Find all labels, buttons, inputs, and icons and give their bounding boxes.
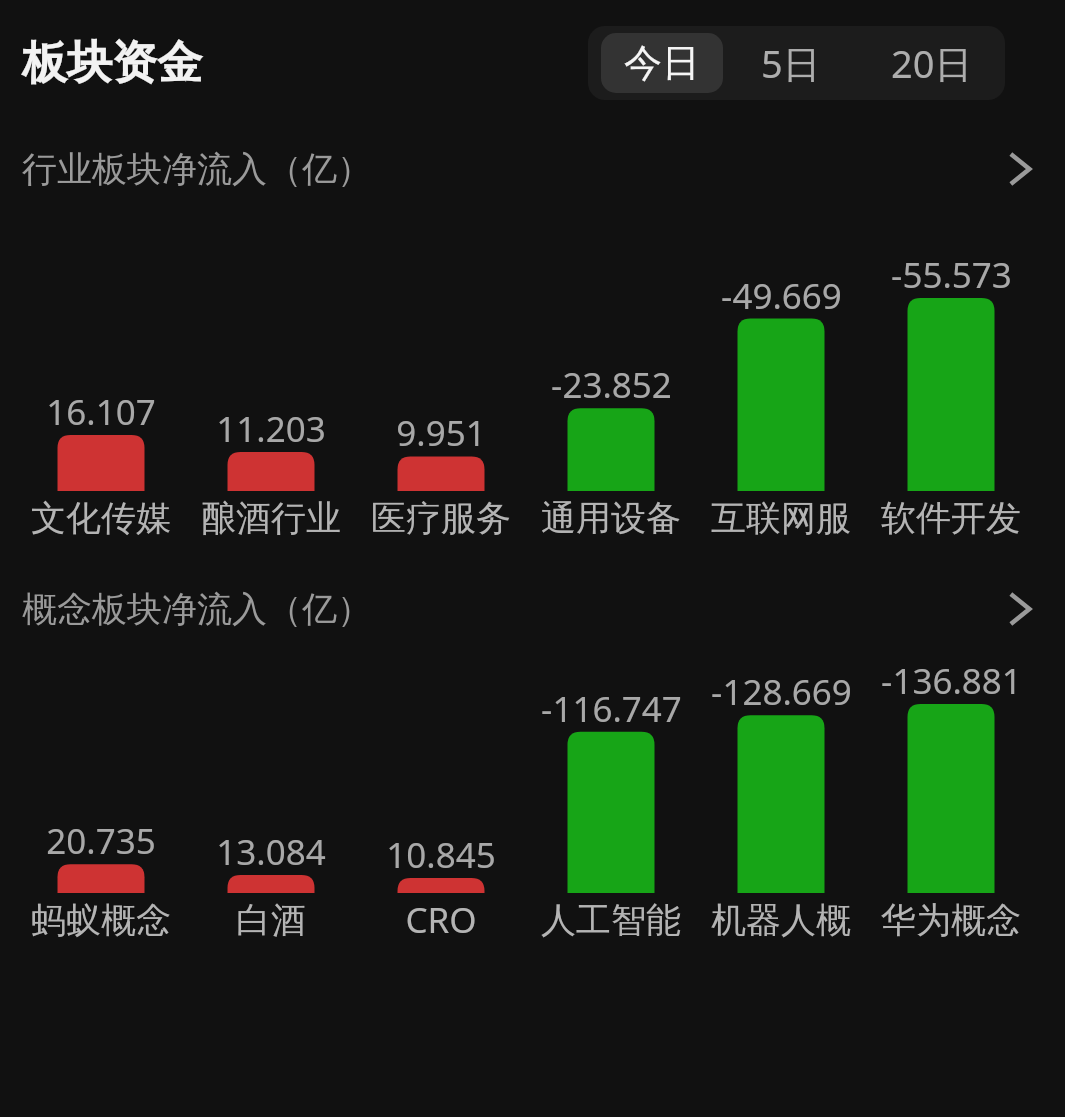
button[interactable]: 16.107 (16, 388, 186, 432)
button[interactable]: 文化传媒 (16, 492, 186, 544)
button[interactable]: 蚂蚁概念 (16, 894, 186, 946)
other: More (1009, 589, 1033, 629)
staticText: 20日 (891, 37, 973, 89)
staticText: 文化传媒 (31, 496, 171, 540)
button[interactable]: 20.735 (16, 817, 186, 861)
staticText: 人工智能 (541, 898, 681, 942)
button[interactable]: 人工智能 (526, 894, 696, 946)
other: More (1009, 149, 1033, 189)
staticText: 10.845 (386, 831, 496, 875)
staticText: 9.951 (396, 409, 486, 453)
staticText: -136.881 (881, 657, 1022, 701)
staticText: 5日 (761, 37, 821, 89)
button[interactable]: 医疗服务 (356, 492, 526, 544)
staticText: 软件开发 (881, 496, 1021, 540)
button[interactable]: CRO (356, 894, 526, 946)
staticText: 16.107 (46, 388, 156, 432)
staticText: 白酒 (236, 898, 306, 942)
button[interactable]: 酿酒行业 (186, 492, 356, 544)
staticText: 行业板块净流入（亿） (22, 147, 372, 191)
button[interactable]: 今日 (601, 33, 723, 93)
button[interactable]: 机器人概念 (696, 894, 866, 946)
staticText: -49.669 (721, 272, 842, 316)
staticText: 机器人概念 (696, 898, 866, 942)
staticText: 华为概念 (881, 898, 1021, 942)
button[interactable]: 软件开发 (866, 492, 1036, 544)
button[interactable]: 20日 (859, 33, 1005, 93)
staticText: 20.735 (46, 817, 156, 861)
button[interactable]: -116.747 (526, 685, 696, 729)
button[interactable]: 华为概念 (866, 894, 1036, 946)
staticText: 11.203 (216, 405, 326, 449)
staticText: CRO (405, 896, 477, 944)
button[interactable]: -55.573 (866, 251, 1036, 295)
button[interactable]: 概念板块净流入（亿） (0, 566, 1065, 652)
staticText: 蚂蚁概念 (31, 898, 171, 942)
button[interactable]: 白酒 (186, 894, 356, 946)
staticText: 13.084 (216, 828, 326, 872)
staticText: 概念板块净流入（亿） (22, 587, 372, 631)
staticText: 互联网服务 (696, 496, 866, 540)
button[interactable]: -49.669 (696, 272, 866, 316)
button[interactable]: 13.084 (186, 828, 356, 872)
button[interactable]: -136.881 (866, 657, 1036, 701)
staticText: 通用设备 (541, 496, 681, 540)
button[interactable]: 9.951 (356, 409, 526, 453)
staticText: -23.852 (551, 361, 672, 405)
staticText: 今日 (624, 39, 700, 87)
staticText: -116.747 (541, 685, 682, 729)
staticText: 医疗服务 (371, 496, 511, 540)
staticText: -55.573 (891, 251, 1012, 295)
button[interactable]: 11.203 (186, 405, 356, 449)
button[interactable]: 互联网服务 (696, 492, 866, 544)
button[interactable]: -128.669 (696, 668, 866, 712)
button[interactable]: 通用设备 (526, 492, 696, 544)
staticText: 酿酒行业 (201, 496, 341, 540)
staticText: -128.669 (711, 668, 852, 712)
staticText: 板块资金 (22, 35, 202, 92)
button[interactable]: -23.852 (526, 361, 696, 405)
button[interactable]: 10.845 (356, 831, 526, 875)
button[interactable]: 5日 (723, 33, 859, 93)
button[interactable]: 行业板块净流入（亿） (0, 126, 1065, 212)
